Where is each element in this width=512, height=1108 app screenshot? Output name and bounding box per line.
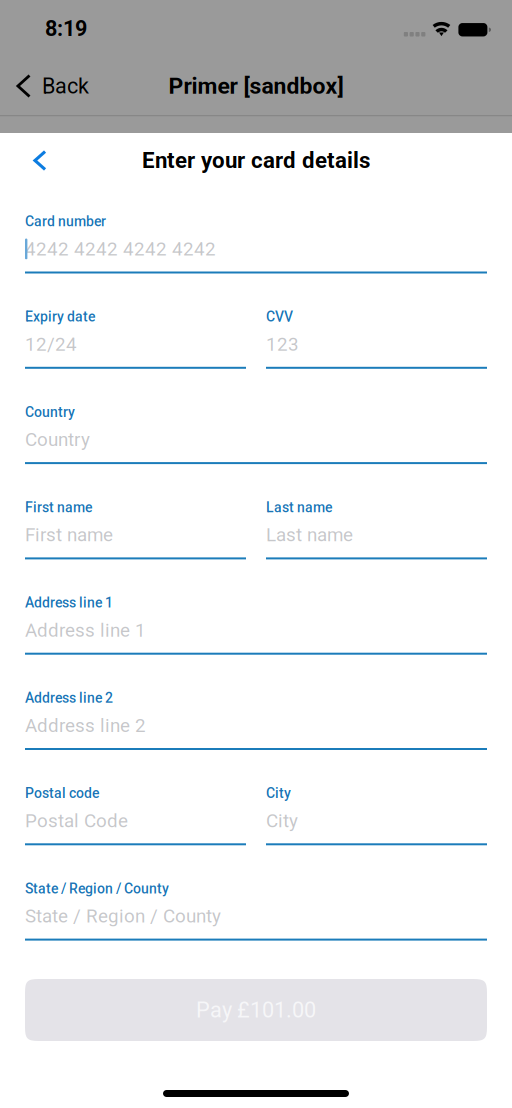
staticText: 4242 4242 4242 4242: [25, 238, 216, 260]
staticText: Expiry date: [25, 309, 95, 325]
staticText: Postal Code: [25, 810, 128, 832]
staticText: Pay £101.00: [196, 997, 316, 1023]
staticText: 123: [266, 333, 299, 355]
staticText: Back: [42, 73, 89, 99]
staticText: 8:19: [45, 16, 87, 41]
staticText: State / Region / County: [25, 905, 221, 927]
staticText: CVV: [266, 309, 293, 325]
staticText: Address line 1: [25, 594, 113, 611]
staticText: City: [266, 785, 291, 801]
button[interactable]: Back: [0, 133, 69, 188]
staticText: 12/24: [25, 333, 77, 355]
staticText: Enter your card details: [142, 147, 370, 174]
staticText: Address line 2: [25, 714, 146, 736]
staticText: First name: [25, 524, 113, 546]
staticText: Postal code: [25, 785, 99, 801]
staticText: Last name: [266, 524, 353, 546]
staticText: Address line 2: [25, 690, 113, 706]
staticText: Primer [sandbox]: [168, 73, 343, 99]
staticText: Address line 1: [25, 619, 146, 641]
staticText: City: [266, 810, 298, 832]
staticText: Country: [25, 429, 90, 451]
button[interactable]: Back: [0, 57, 103, 115]
staticText: Country: [25, 404, 75, 420]
staticText: State / Region / County: [25, 880, 169, 897]
staticText: Card number: [25, 213, 106, 230]
staticText: First name: [25, 499, 92, 516]
staticText: Last name: [266, 499, 332, 516]
